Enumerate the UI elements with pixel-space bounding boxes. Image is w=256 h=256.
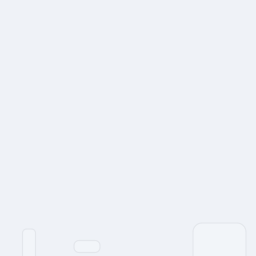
button[interactable]: Pill bbox=[74, 240, 100, 252]
button[interactable]: Placeholder bbox=[22, 229, 35, 256]
